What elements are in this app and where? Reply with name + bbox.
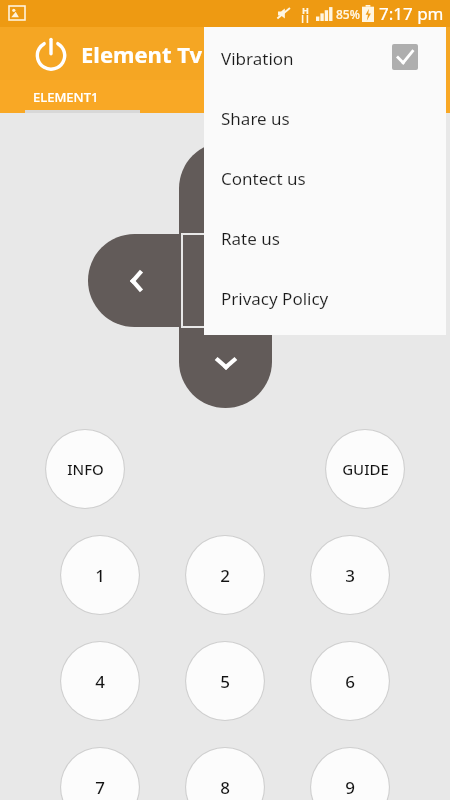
button[interactable]: 7 — [60, 747, 140, 800]
button[interactable]: Left — [88, 234, 181, 327]
staticText: 9 — [345, 776, 355, 799]
staticText: 1 — [95, 564, 105, 587]
staticText: Privacy Policy — [221, 287, 329, 310]
button[interactable]: 2 — [185, 535, 265, 615]
staticText: GUIDE — [342, 459, 389, 479]
button[interactable]: 5 — [185, 641, 265, 721]
button[interactable]: GUIDE — [325, 429, 405, 509]
staticText: 85% — [336, 6, 360, 22]
button[interactable]: 6 — [310, 641, 390, 721]
button[interactable]: INFO — [45, 429, 125, 509]
staticText: Contect us — [221, 167, 306, 190]
staticText: 2 — [220, 564, 230, 587]
button[interactable]: Right — [271, 234, 363, 327]
button[interactable]: Contect us — [204, 147, 446, 207]
button[interactable]: 4 — [60, 641, 140, 721]
staticText: 7:17 pm — [379, 2, 444, 25]
button[interactable]: 9 — [310, 747, 390, 800]
button[interactable]: 3 — [310, 535, 390, 615]
staticText: 6 — [345, 670, 355, 693]
staticText: INFO — [67, 459, 104, 479]
button[interactable]: Share us — [204, 87, 446, 147]
staticText: 8 — [220, 776, 230, 799]
staticText: Vibration — [221, 47, 294, 70]
staticText: Share us — [221, 107, 290, 130]
button[interactable]: Up — [179, 142, 272, 233]
staticText: Element Tv — [81, 39, 202, 69]
button[interactable]: ELEMENT1 — [0, 80, 145, 113]
button[interactable]: Rate us — [204, 207, 446, 267]
button[interactable]: 1 — [60, 535, 140, 615]
staticText: 3 — [345, 564, 355, 587]
staticText: Rate us — [221, 227, 280, 250]
button[interactable]: Privacy Policy — [204, 267, 446, 327]
button[interactable]: Power — [33, 36, 69, 72]
staticText: ELEMENT1 — [33, 88, 99, 106]
staticText: 5 — [220, 670, 230, 693]
button[interactable]: 8 — [185, 747, 265, 800]
staticText: 4 — [95, 670, 105, 693]
staticText: H — [302, 4, 309, 16]
button[interactable]: Down — [179, 328, 272, 408]
button[interactable]: OK — [182, 235, 270, 323]
staticText: 7 — [95, 776, 105, 799]
button[interactable]: Vibration — [204, 27, 446, 87]
